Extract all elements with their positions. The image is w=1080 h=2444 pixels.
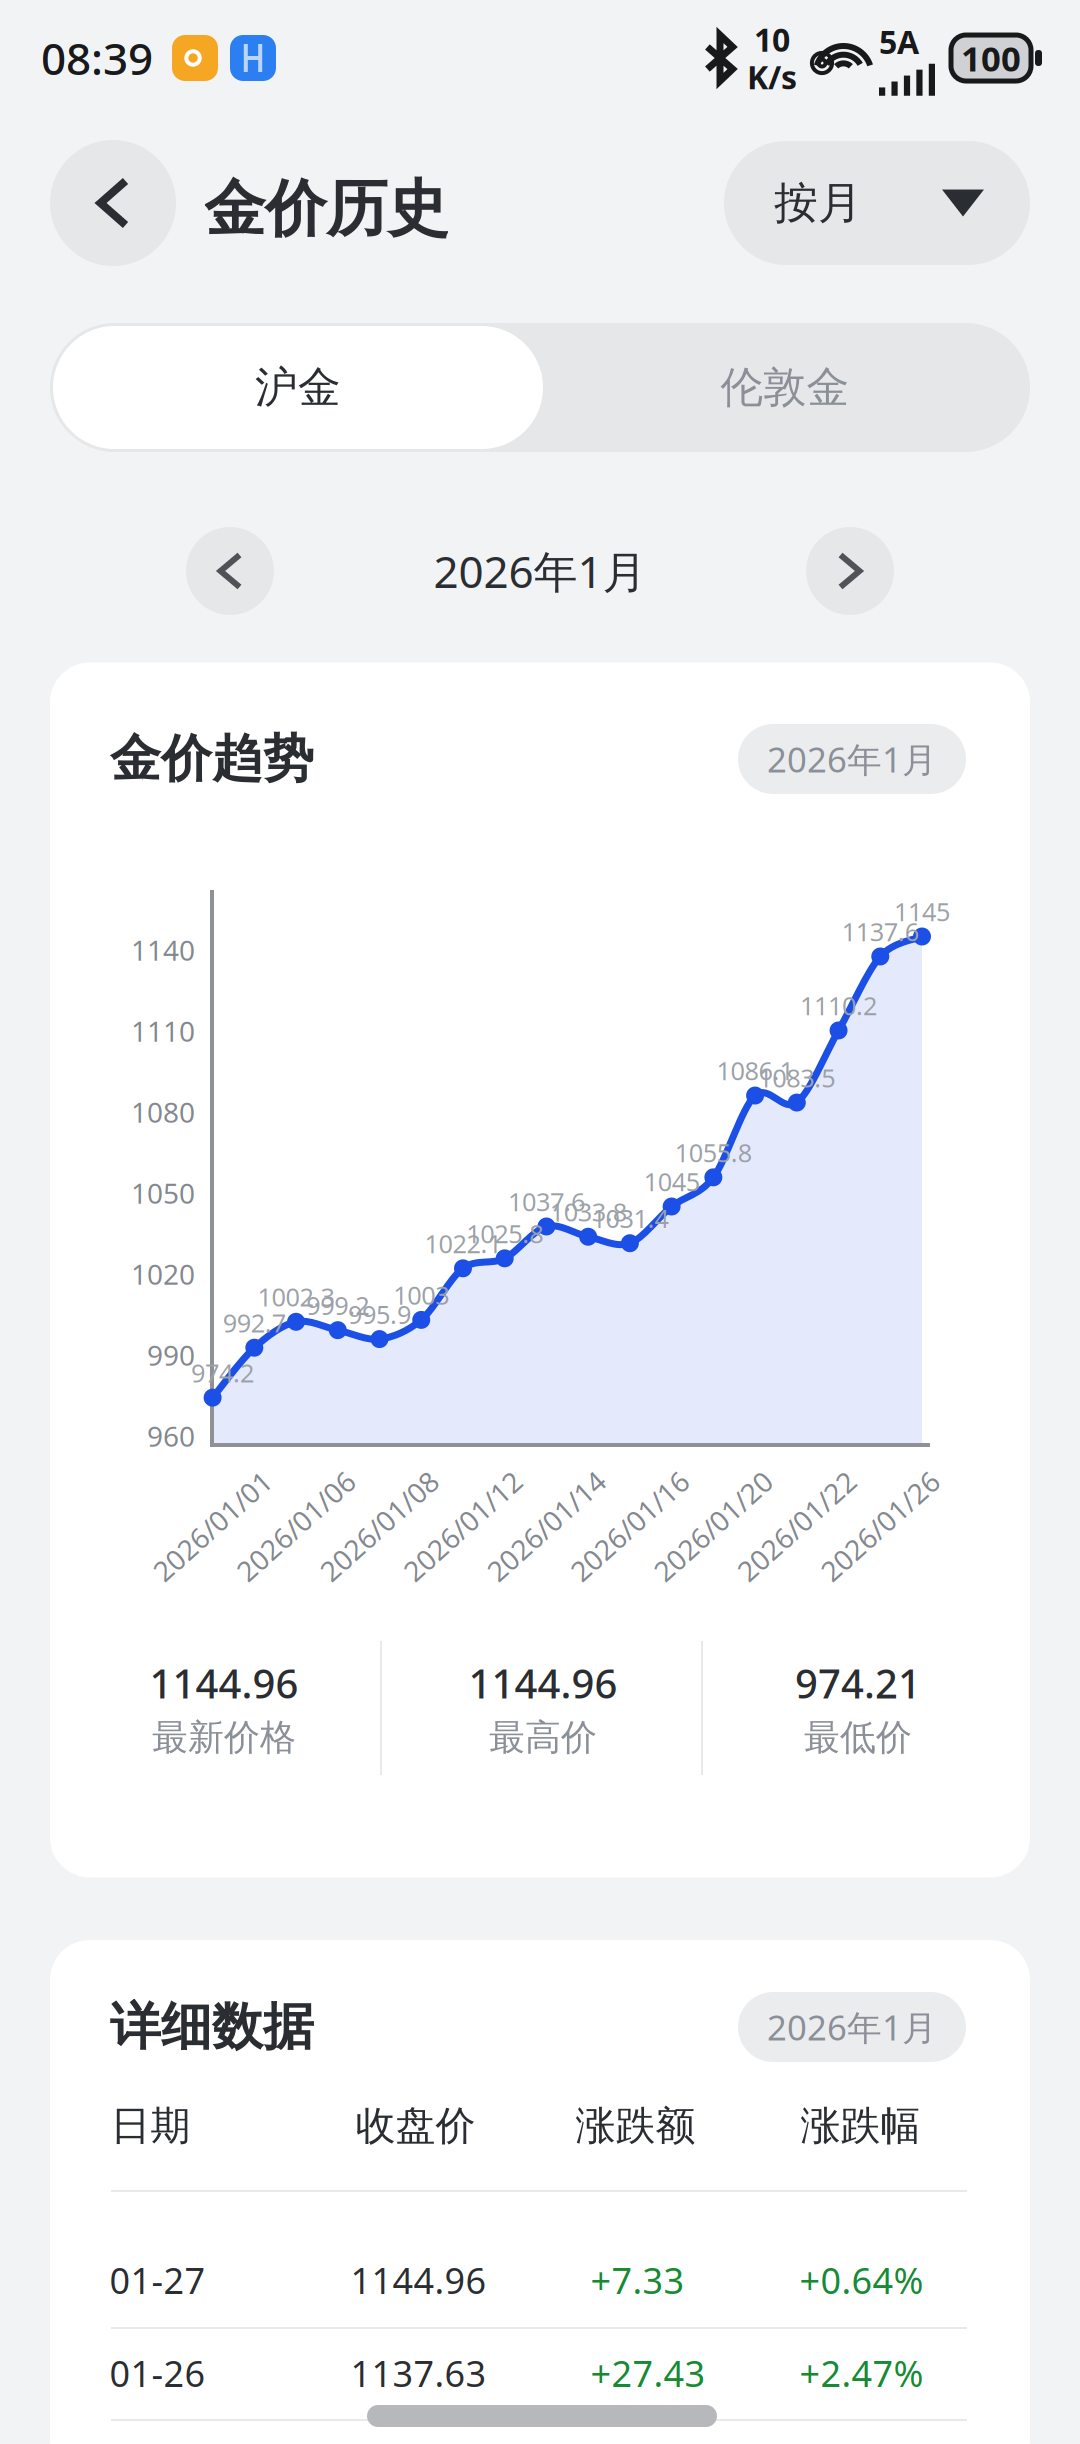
staticText: 2026/01/14	[472, 1507, 620, 1545]
button[interactable]: 01-26	[109, 2327, 966, 2419]
staticText: 100	[961, 35, 1021, 81]
staticText: 1055.8	[675, 1135, 752, 1169]
button[interactable]: 01-27	[109, 2234, 966, 2326]
staticText: 1031.4	[591, 1201, 668, 1235]
staticText: 1137.63	[350, 2349, 486, 2397]
button[interactable]: 按月	[724, 141, 1030, 265]
staticText: 1144.96	[468, 1656, 617, 1709]
staticText: 08:39	[41, 29, 153, 87]
staticText: 2026/01/20	[639, 1507, 787, 1545]
staticText: 2026/01/26	[806, 1507, 954, 1545]
staticText: 2026/01/08	[305, 1507, 453, 1545]
staticText: 1086.1	[717, 1054, 794, 1087]
staticText: +0.64%	[799, 2256, 923, 2304]
staticText: 1037.6	[508, 1185, 585, 1218]
staticText: 1022.1	[424, 1226, 501, 1260]
staticText: 金价历史	[204, 171, 448, 247]
staticText: K/s	[747, 55, 797, 98]
staticText: 2026年1月	[433, 542, 646, 600]
staticText: 999.2	[306, 1288, 369, 1322]
staticText: 1144.96	[350, 2256, 486, 2304]
staticText: 10	[754, 18, 790, 60]
button[interactable]: Next month	[806, 527, 894, 615]
staticText: 详细数据	[110, 1996, 314, 2058]
staticText: 1033.8	[550, 1195, 627, 1228]
staticText: 974.2	[191, 1356, 254, 1389]
staticText: 最新价格	[152, 1715, 296, 1760]
staticText: 2026/01/22	[722, 1507, 870, 1545]
staticText: 995.9	[348, 1297, 411, 1331]
staticText: 涨跌额	[575, 2101, 695, 2150]
staticText: +2.47%	[799, 2349, 923, 2397]
staticText: 1110	[131, 1012, 195, 1050]
staticText: 最高价	[489, 1715, 597, 1760]
staticText: +7.33	[590, 2256, 684, 2304]
staticText: 2026年1月	[767, 2004, 937, 2050]
staticText: 1050	[131, 1174, 195, 1212]
staticText: 2026/01/16	[556, 1507, 704, 1545]
staticText: 伦敦金	[720, 361, 849, 414]
staticText: 收盘价	[355, 2101, 475, 2150]
staticText: 1110.2	[800, 989, 877, 1022]
staticText: 1045	[644, 1165, 700, 1198]
button[interactable]: Previous month	[186, 527, 274, 615]
staticText: 日期	[110, 2101, 190, 2150]
staticText: 1002.3	[258, 1280, 335, 1314]
staticText: 01-27	[109, 2256, 205, 2304]
staticText: +27.43	[590, 2349, 705, 2397]
button[interactable]: 伦敦金	[543, 326, 1027, 449]
staticText: 1137.6	[842, 915, 919, 948]
staticText: 992.7	[223, 1306, 286, 1339]
staticText: 1144.96	[149, 1656, 298, 1709]
staticText: 2026年1月	[767, 736, 937, 782]
button[interactable]: 沪金	[53, 326, 543, 449]
staticText: 2026/01/06	[222, 1507, 370, 1545]
staticText: 1145	[894, 895, 950, 928]
staticText: 5A	[879, 20, 919, 63]
button[interactable]: Back	[50, 140, 176, 266]
staticText: 涨跌幅	[800, 2101, 920, 2150]
staticText: 1003	[393, 1278, 449, 1312]
staticText: 1025.8	[466, 1216, 543, 1250]
staticText: 按月	[774, 176, 862, 230]
staticText: 1140	[131, 931, 195, 969]
staticText: 960	[147, 1417, 195, 1455]
staticText: 1083.5	[758, 1061, 835, 1094]
staticText: 1080	[131, 1093, 195, 1131]
staticText: 最低价	[804, 1715, 912, 1760]
staticText: 2026/01/12	[389, 1507, 537, 1545]
staticText: 990	[147, 1336, 195, 1374]
staticText: 01-26	[109, 2349, 205, 2397]
staticText: 沪金	[255, 361, 341, 414]
staticText: 1020	[131, 1255, 195, 1293]
staticText: 974.21	[795, 1656, 921, 1709]
staticText: 2026/01/01	[138, 1507, 286, 1545]
staticText: 金价趋势	[110, 728, 314, 790]
